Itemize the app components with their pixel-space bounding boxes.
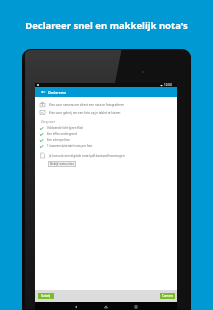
staticText: Een effen ondergrond — [47, 132, 77, 136]
staticText: Voldoende licht (geen flits) — [47, 126, 83, 130]
other: Home — [104, 305, 108, 309]
staticText: Camera — [162, 294, 173, 298]
staticText: 12:04 — [164, 83, 172, 87]
other: Back — [41, 90, 45, 94]
button[interactable]: Galerij — [38, 293, 54, 299]
button[interactable]: Back — [35, 87, 177, 97]
button[interactable]: Recents — [131, 303, 141, 310]
button[interactable]: Back — [71, 303, 81, 310]
staticText: Bekijk instructies — [50, 162, 74, 166]
staticText: Declareer snel en makkelijk nota's — [0, 19, 213, 32]
button[interactable]: Kies voor camera om direct een nota te f… — [40, 102, 182, 107]
button[interactable]: Bekijk instructies — [48, 161, 76, 167]
staticText: Een scherpe foto — [47, 138, 70, 142]
staticText: Kies voor camera om direct een nota te f… — [49, 103, 125, 107]
staticText: Je kan ook een digitale nota (pdf-bestan… — [49, 154, 125, 158]
button[interactable]: Home — [101, 303, 111, 310]
button[interactable]: Je kan ook een digitale nota (pdf-bestan… — [40, 153, 125, 158]
other: Recents — [134, 305, 138, 309]
other: Back — [74, 305, 78, 309]
staticText: Declareren — [48, 90, 67, 95]
button[interactable]: Camera — [160, 293, 175, 299]
staticText: Galerij — [41, 294, 51, 298]
staticText: 1 (aaneensluitende) nota per foto — [47, 144, 93, 148]
staticText: Zorg voor — [41, 120, 55, 124]
staticText: Kies voor galerij om een foto op je tabl… — [49, 111, 121, 115]
button[interactable]: Kies voor galerij om een foto op je tabl… — [40, 110, 182, 115]
